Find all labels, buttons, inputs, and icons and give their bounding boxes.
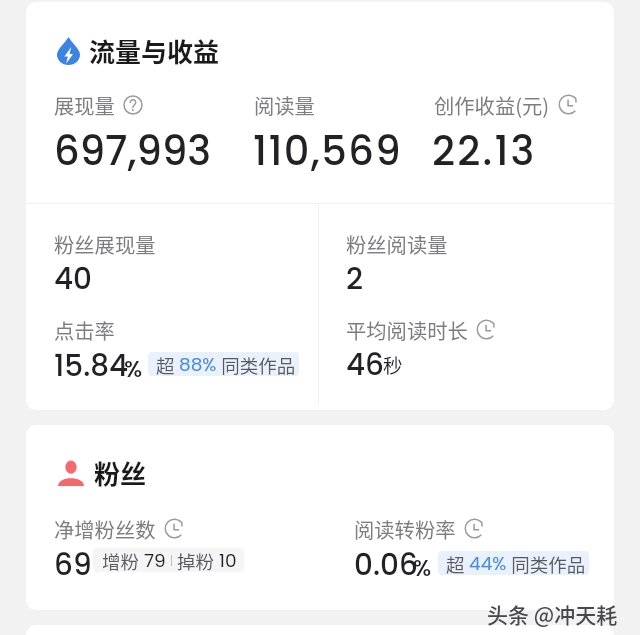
button[interactable]: 流量与收益 (57, 32, 220, 70)
staticText: 掉粉 (177, 548, 219, 572)
staticText: 粉丝阅读量 (346, 229, 448, 258)
staticText: 15.84 (54, 345, 129, 386)
staticText: % (413, 552, 432, 584)
staticText: 超 (446, 551, 469, 575)
button[interactable]: 超 (438, 551, 589, 575)
staticText: 88% (179, 352, 217, 376)
staticText: 2 (346, 258, 364, 299)
staticText: 0.06 (354, 544, 418, 585)
staticText: 44% (469, 551, 507, 575)
staticText: 流量与收益 (89, 32, 220, 70)
button[interactable]: 超 (148, 352, 299, 376)
staticText: 69 (54, 544, 92, 585)
button[interactable]: History (164, 518, 185, 539)
staticText: 头条 @冲天耗 (487, 599, 618, 629)
staticText: 秒 (383, 350, 403, 378)
staticText: 超 (156, 352, 179, 376)
staticText: 79 (144, 548, 166, 572)
staticText: 阅读量 (254, 90, 315, 119)
staticText: 阅读转粉率 (354, 514, 456, 543)
staticText: 同类作品 (507, 551, 586, 575)
staticText: 净增粉丝数 (54, 514, 156, 543)
staticText: 增粉 (102, 548, 144, 572)
staticText: 10 (219, 548, 237, 572)
staticText: % (124, 353, 143, 385)
staticText: 40 (54, 258, 92, 299)
staticText: 同类作品 (217, 352, 296, 376)
button[interactable]: 粉丝 (58, 454, 147, 492)
staticText: 展现量 (54, 90, 115, 119)
staticText: 46 (346, 344, 385, 385)
staticText: 粉丝展现量 (54, 229, 156, 258)
staticText: 110,569 (253, 123, 403, 179)
button[interactable]: History (558, 94, 579, 115)
staticText: 22.13 (432, 123, 537, 179)
button[interactable]: History (476, 319, 497, 340)
staticText: 平均阅读时长 (346, 315, 468, 344)
staticText: 创作收益(元) (434, 90, 550, 119)
button[interactable]: History (464, 518, 485, 539)
staticText: 697,993 (54, 123, 212, 179)
staticText: 粉丝 (94, 454, 147, 492)
button[interactable]: Help (123, 95, 143, 115)
button[interactable]: 增粉 (93, 548, 244, 572)
staticText: 点击率 (54, 315, 115, 344)
